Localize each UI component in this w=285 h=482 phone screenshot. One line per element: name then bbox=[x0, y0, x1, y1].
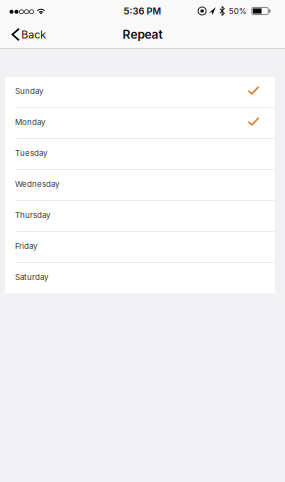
staticText: Wednesday bbox=[15, 179, 59, 189]
staticText: 5:36 PM bbox=[123, 5, 161, 16]
button[interactable]: Wednesday bbox=[5, 170, 275, 200]
button[interactable]: Saturday bbox=[5, 263, 275, 293]
button[interactable]: Monday bbox=[5, 108, 275, 138]
staticText: Monday bbox=[15, 117, 45, 127]
button[interactable]: Sunday bbox=[5, 77, 275, 107]
staticText: Back bbox=[21, 28, 46, 41]
staticText: Saturday bbox=[15, 272, 48, 282]
staticText: Tuesday bbox=[15, 148, 47, 158]
button[interactable]: Thursday bbox=[5, 201, 275, 231]
button[interactable]: Friday bbox=[5, 232, 275, 262]
staticText: Repeat bbox=[122, 27, 162, 42]
button[interactable]: Tuesday bbox=[5, 139, 275, 169]
staticText: 50% bbox=[229, 6, 247, 16]
button[interactable]: Back bbox=[0, 28, 46, 41]
staticText: Thursday bbox=[15, 210, 50, 220]
staticText: Sunday bbox=[15, 86, 43, 96]
staticText: Friday bbox=[15, 241, 37, 251]
